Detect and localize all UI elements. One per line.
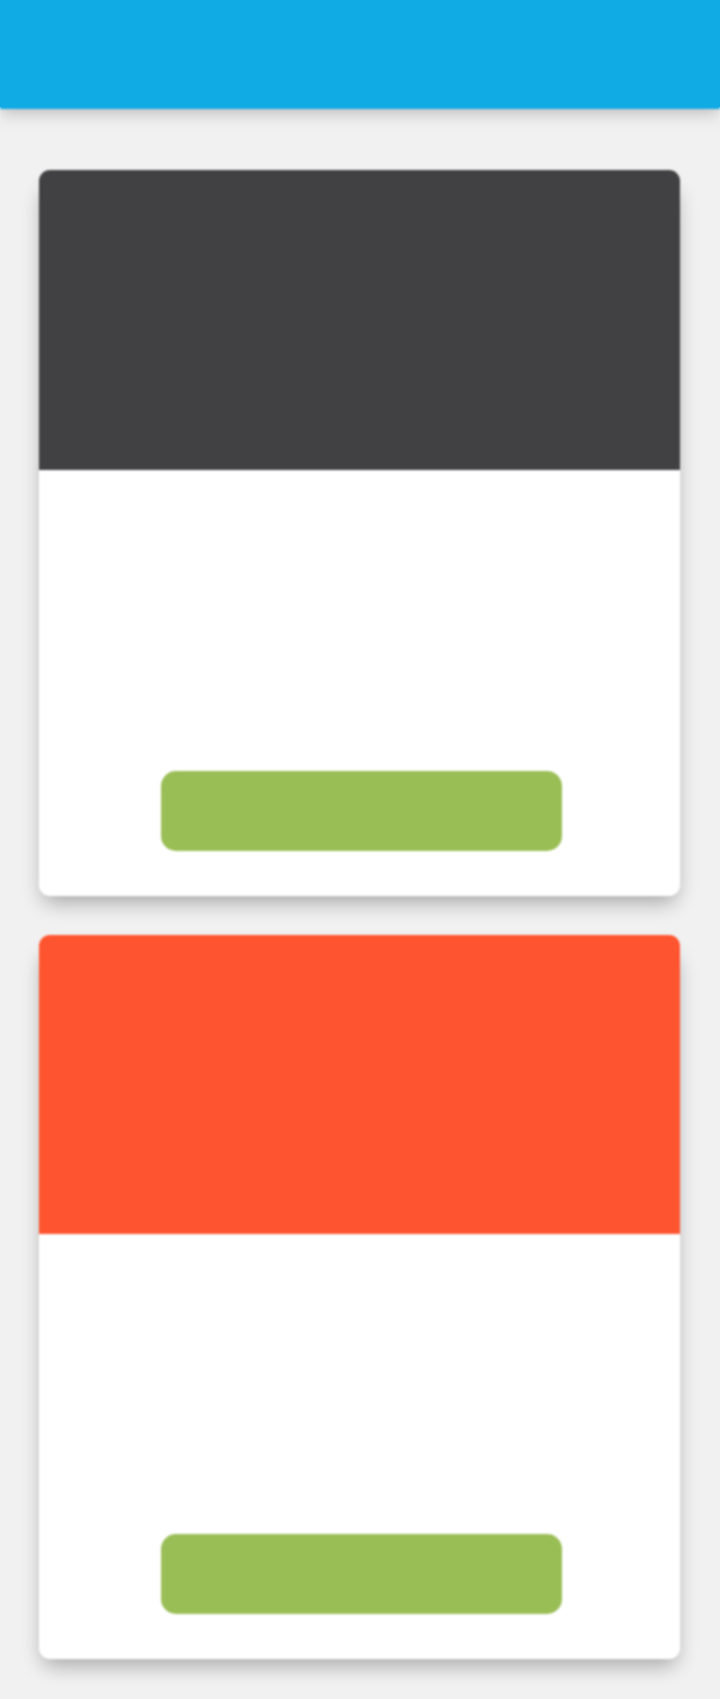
button[interactable]: Open item 1 bbox=[39, 170, 680, 896]
button[interactable]: Action bbox=[161, 1534, 562, 1614]
button[interactable]: Open item 2 bbox=[39, 935, 680, 1659]
button[interactable]: Action bbox=[161, 771, 562, 851]
